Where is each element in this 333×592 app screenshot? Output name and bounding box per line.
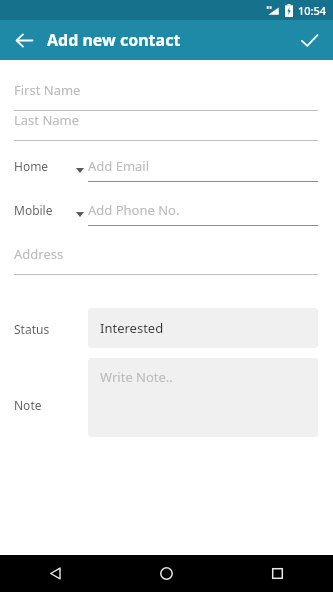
staticText: Note	[14, 397, 42, 413]
staticText: Mobile	[14, 202, 53, 218]
staticText: Add Phone No.	[88, 201, 180, 219]
button[interactable]: Home	[14, 155, 76, 177]
button[interactable]: Recent apps	[222, 555, 333, 592]
staticText: Interested	[100, 319, 164, 337]
button[interactable]: Mobile type dropdown	[72, 199, 88, 221]
button[interactable]: Write Note..	[88, 358, 318, 437]
staticText: Add new contact	[47, 29, 181, 51]
button[interactable]: Add Email	[88, 155, 318, 177]
button[interactable]: First Name	[14, 81, 318, 111]
staticText: Address	[14, 245, 64, 263]
button[interactable]: Back	[0, 555, 111, 592]
button[interactable]: Interested	[88, 308, 318, 348]
button[interactable]: Home	[111, 555, 222, 592]
staticText: Write Note..	[100, 368, 173, 386]
button[interactable]: Mobile	[14, 199, 76, 221]
staticText: Last Name	[14, 111, 80, 129]
button[interactable]: Add Phone No.	[88, 199, 318, 221]
button[interactable]: Last Name	[14, 111, 318, 141]
staticText: Status	[14, 321, 50, 337]
staticText: 10:54	[298, 3, 327, 18]
staticText: Home	[14, 158, 49, 174]
button[interactable]: Address	[14, 245, 318, 275]
button[interactable]: Home type dropdown	[72, 155, 88, 177]
button[interactable]: Save contact	[293, 24, 325, 56]
staticText: Add Email	[88, 157, 150, 175]
button[interactable]: Back	[8, 24, 40, 56]
staticText: First Name	[14, 81, 81, 99]
